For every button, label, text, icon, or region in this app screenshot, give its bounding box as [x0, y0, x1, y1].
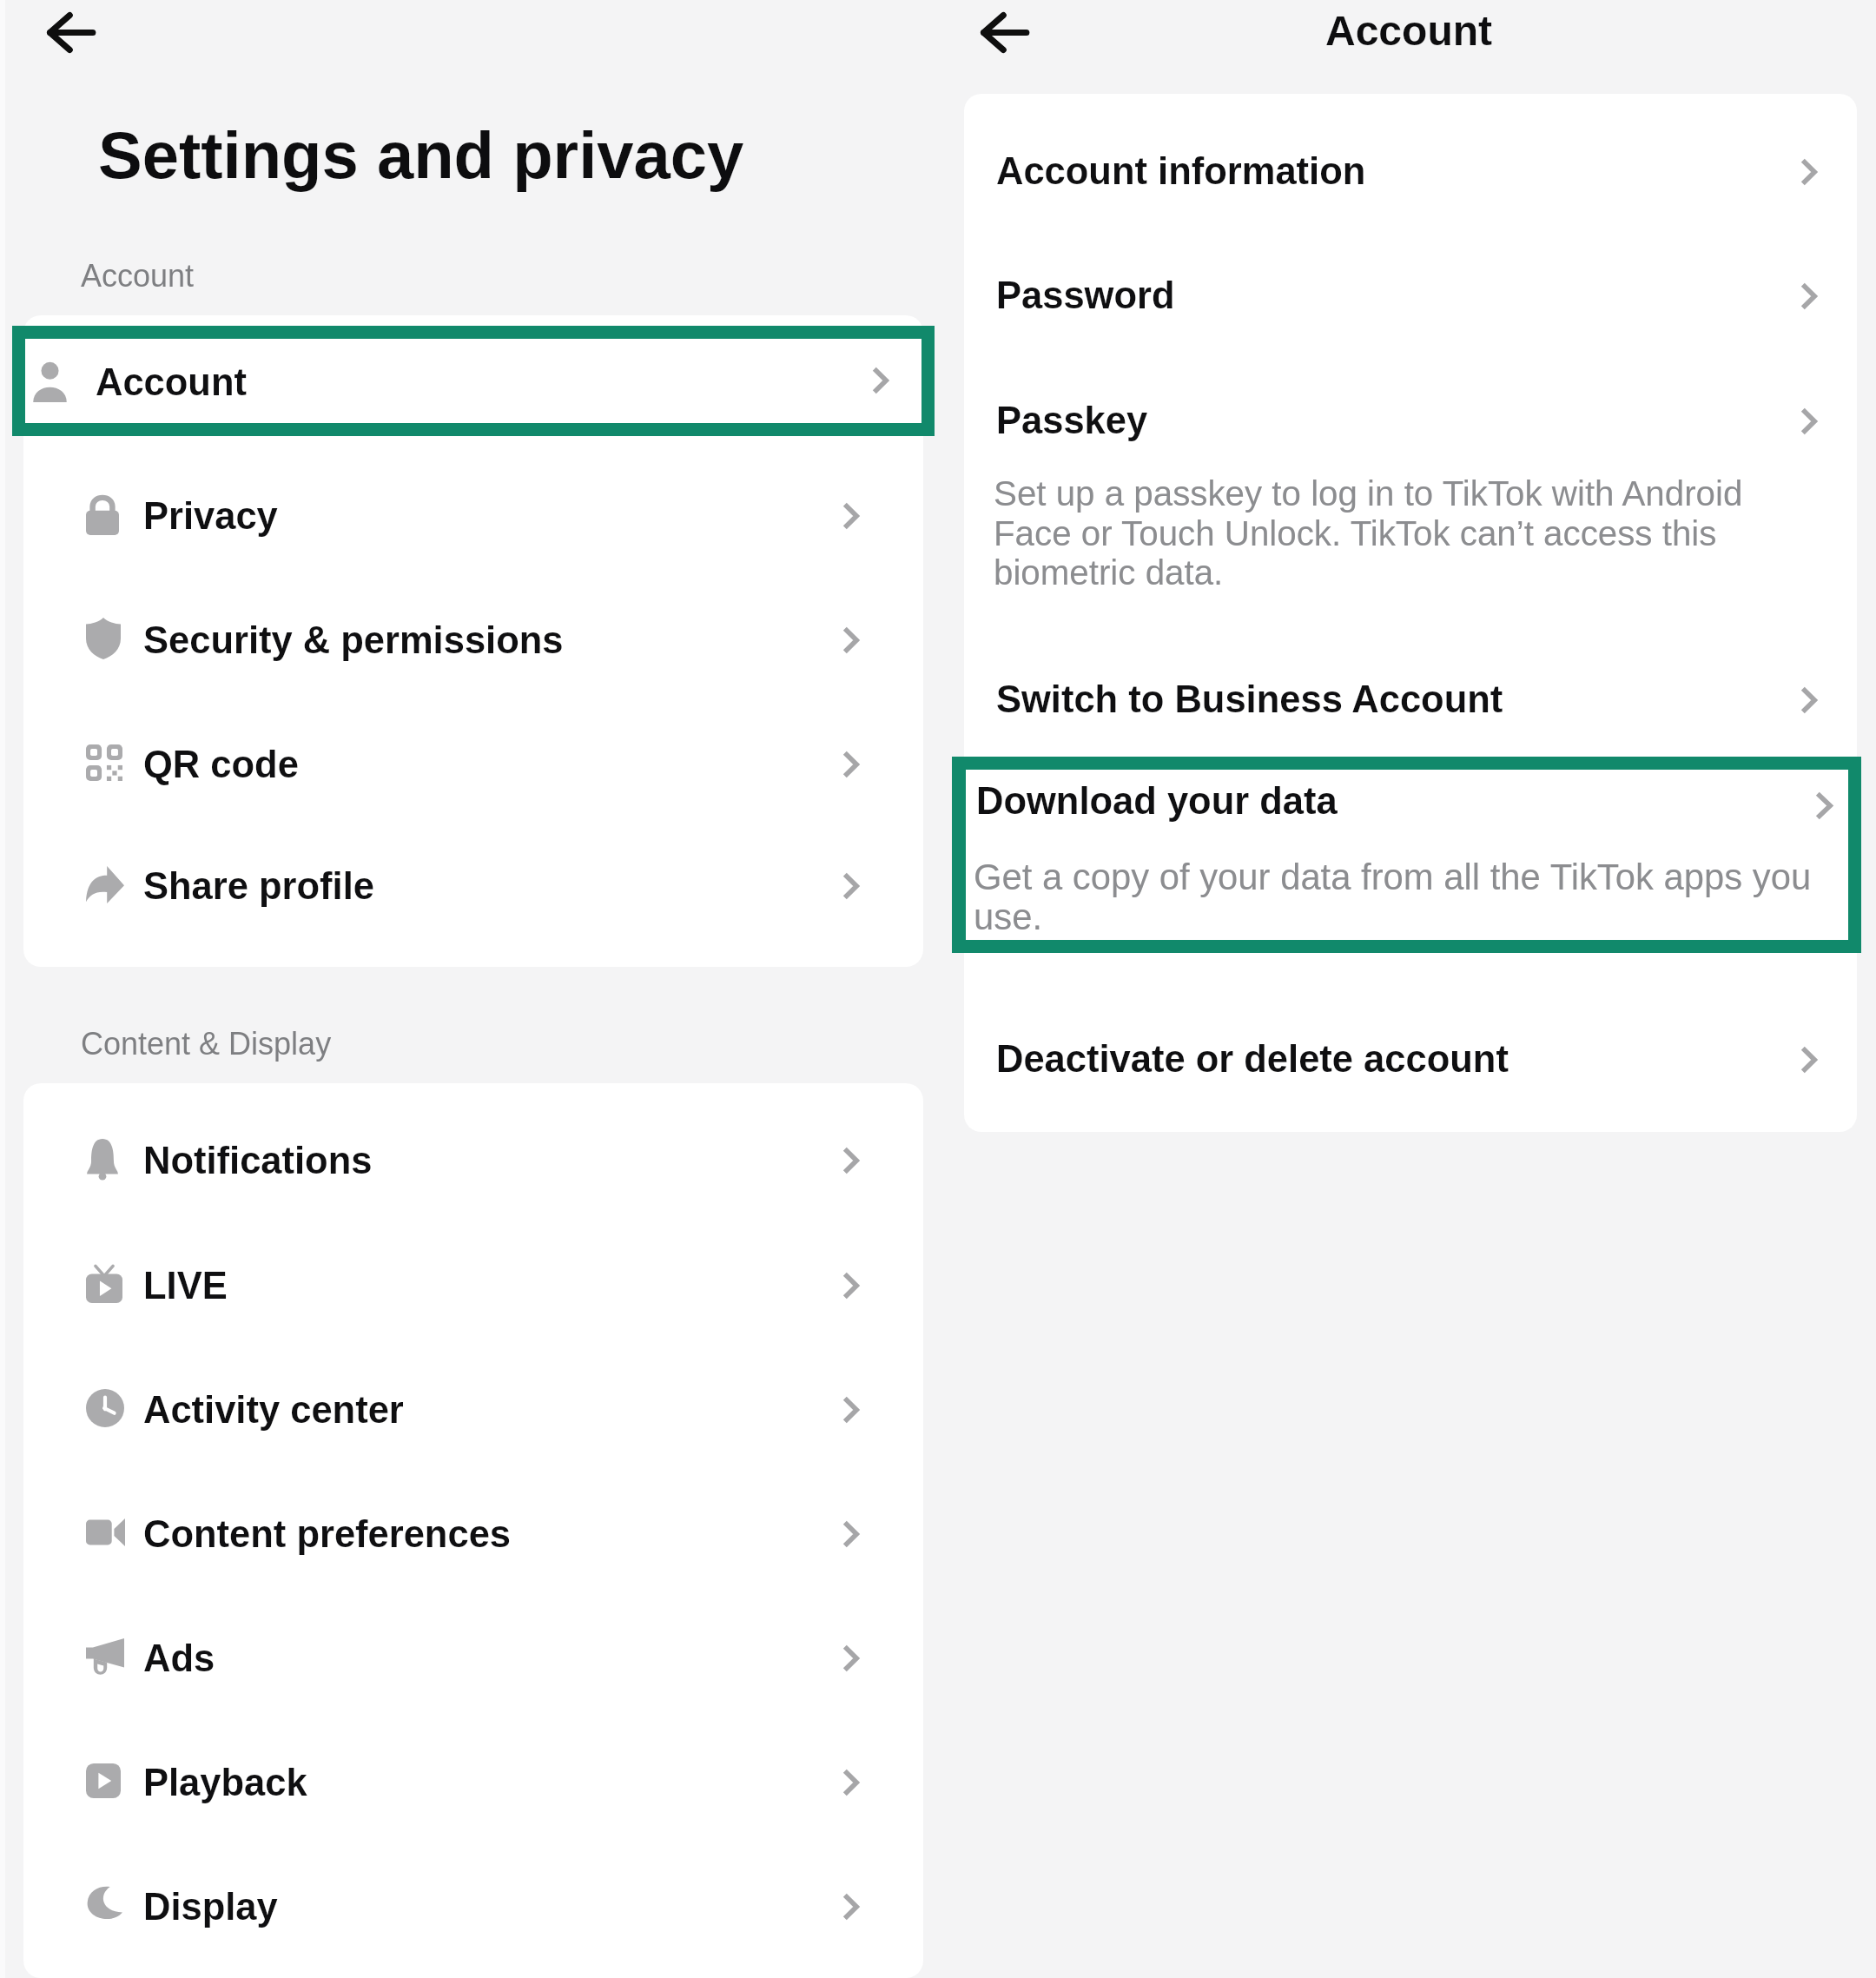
button[interactable]: Download your data — [964, 741, 1857, 865]
button[interactable]: Share profile — [23, 823, 923, 947]
staticText: Account information — [996, 150, 1366, 193]
staticText: Download your data — [996, 783, 1357, 825]
button[interactable]: QR code — [23, 701, 923, 825]
staticText: Settings and privacy — [98, 118, 744, 192]
staticText: Security & permissions — [143, 619, 564, 662]
staticText: Content & Display — [81, 1026, 332, 1061]
staticText: Account — [1325, 8, 1492, 55]
button[interactable]: Activity center — [23, 1346, 923, 1471]
staticText: Account — [143, 371, 294, 413]
button[interactable]: Account information — [964, 109, 1857, 233]
button[interactable]: Display — [23, 1843, 923, 1968]
staticText: Switch to Business Account — [996, 678, 1503, 721]
staticText: Set up a passkey to log in to TikTok wit… — [994, 474, 1801, 592]
staticText: Playback — [143, 1762, 307, 1804]
staticText: Privacy — [143, 495, 278, 538]
staticText: Password — [996, 275, 1175, 317]
staticText: Passkey — [996, 400, 1148, 442]
staticText: Share profile — [143, 865, 374, 908]
staticText: Ads — [143, 1637, 215, 1680]
staticText: Get a copy of your data from all the Tik… — [994, 858, 1806, 937]
button[interactable]: Back — [47, 12, 96, 53]
button[interactable]: Account — [23, 328, 923, 453]
button[interactable]: LIVE — [23, 1222, 923, 1346]
staticText: Account — [96, 361, 247, 404]
button[interactable]: Content preferences — [23, 1471, 923, 1595]
button[interactable]: Playback — [23, 1719, 923, 1843]
staticText: Content preferences — [143, 1513, 512, 1556]
staticText: Notifications — [143, 1140, 373, 1182]
staticText: Display — [143, 1886, 278, 1928]
staticText: Get a copy of your data from all the Tik… — [974, 857, 1829, 937]
staticText: Account — [81, 258, 195, 293]
button[interactable]: Download your data — [966, 770, 1848, 940]
button[interactable]: Deactivate or delete account — [964, 996, 1857, 1121]
staticText: Activity center — [143, 1389, 404, 1432]
button[interactable]: Passkey — [964, 358, 1857, 482]
staticText: LIVE — [143, 1265, 228, 1307]
button[interactable]: Switch to Business Account — [964, 637, 1857, 761]
button[interactable]: Back — [981, 12, 1029, 53]
button[interactable]: Notifications — [23, 1097, 923, 1221]
staticText: QR code — [143, 744, 299, 786]
staticText: Deactivate or delete account — [996, 1038, 1509, 1081]
button[interactable]: Account — [25, 339, 921, 423]
button[interactable]: Privacy — [23, 453, 923, 577]
button[interactable]: Password — [964, 233, 1857, 357]
button[interactable]: Ads — [23, 1595, 923, 1719]
button[interactable]: Security & permissions — [23, 577, 923, 701]
staticText: Download your data — [976, 780, 1338, 823]
